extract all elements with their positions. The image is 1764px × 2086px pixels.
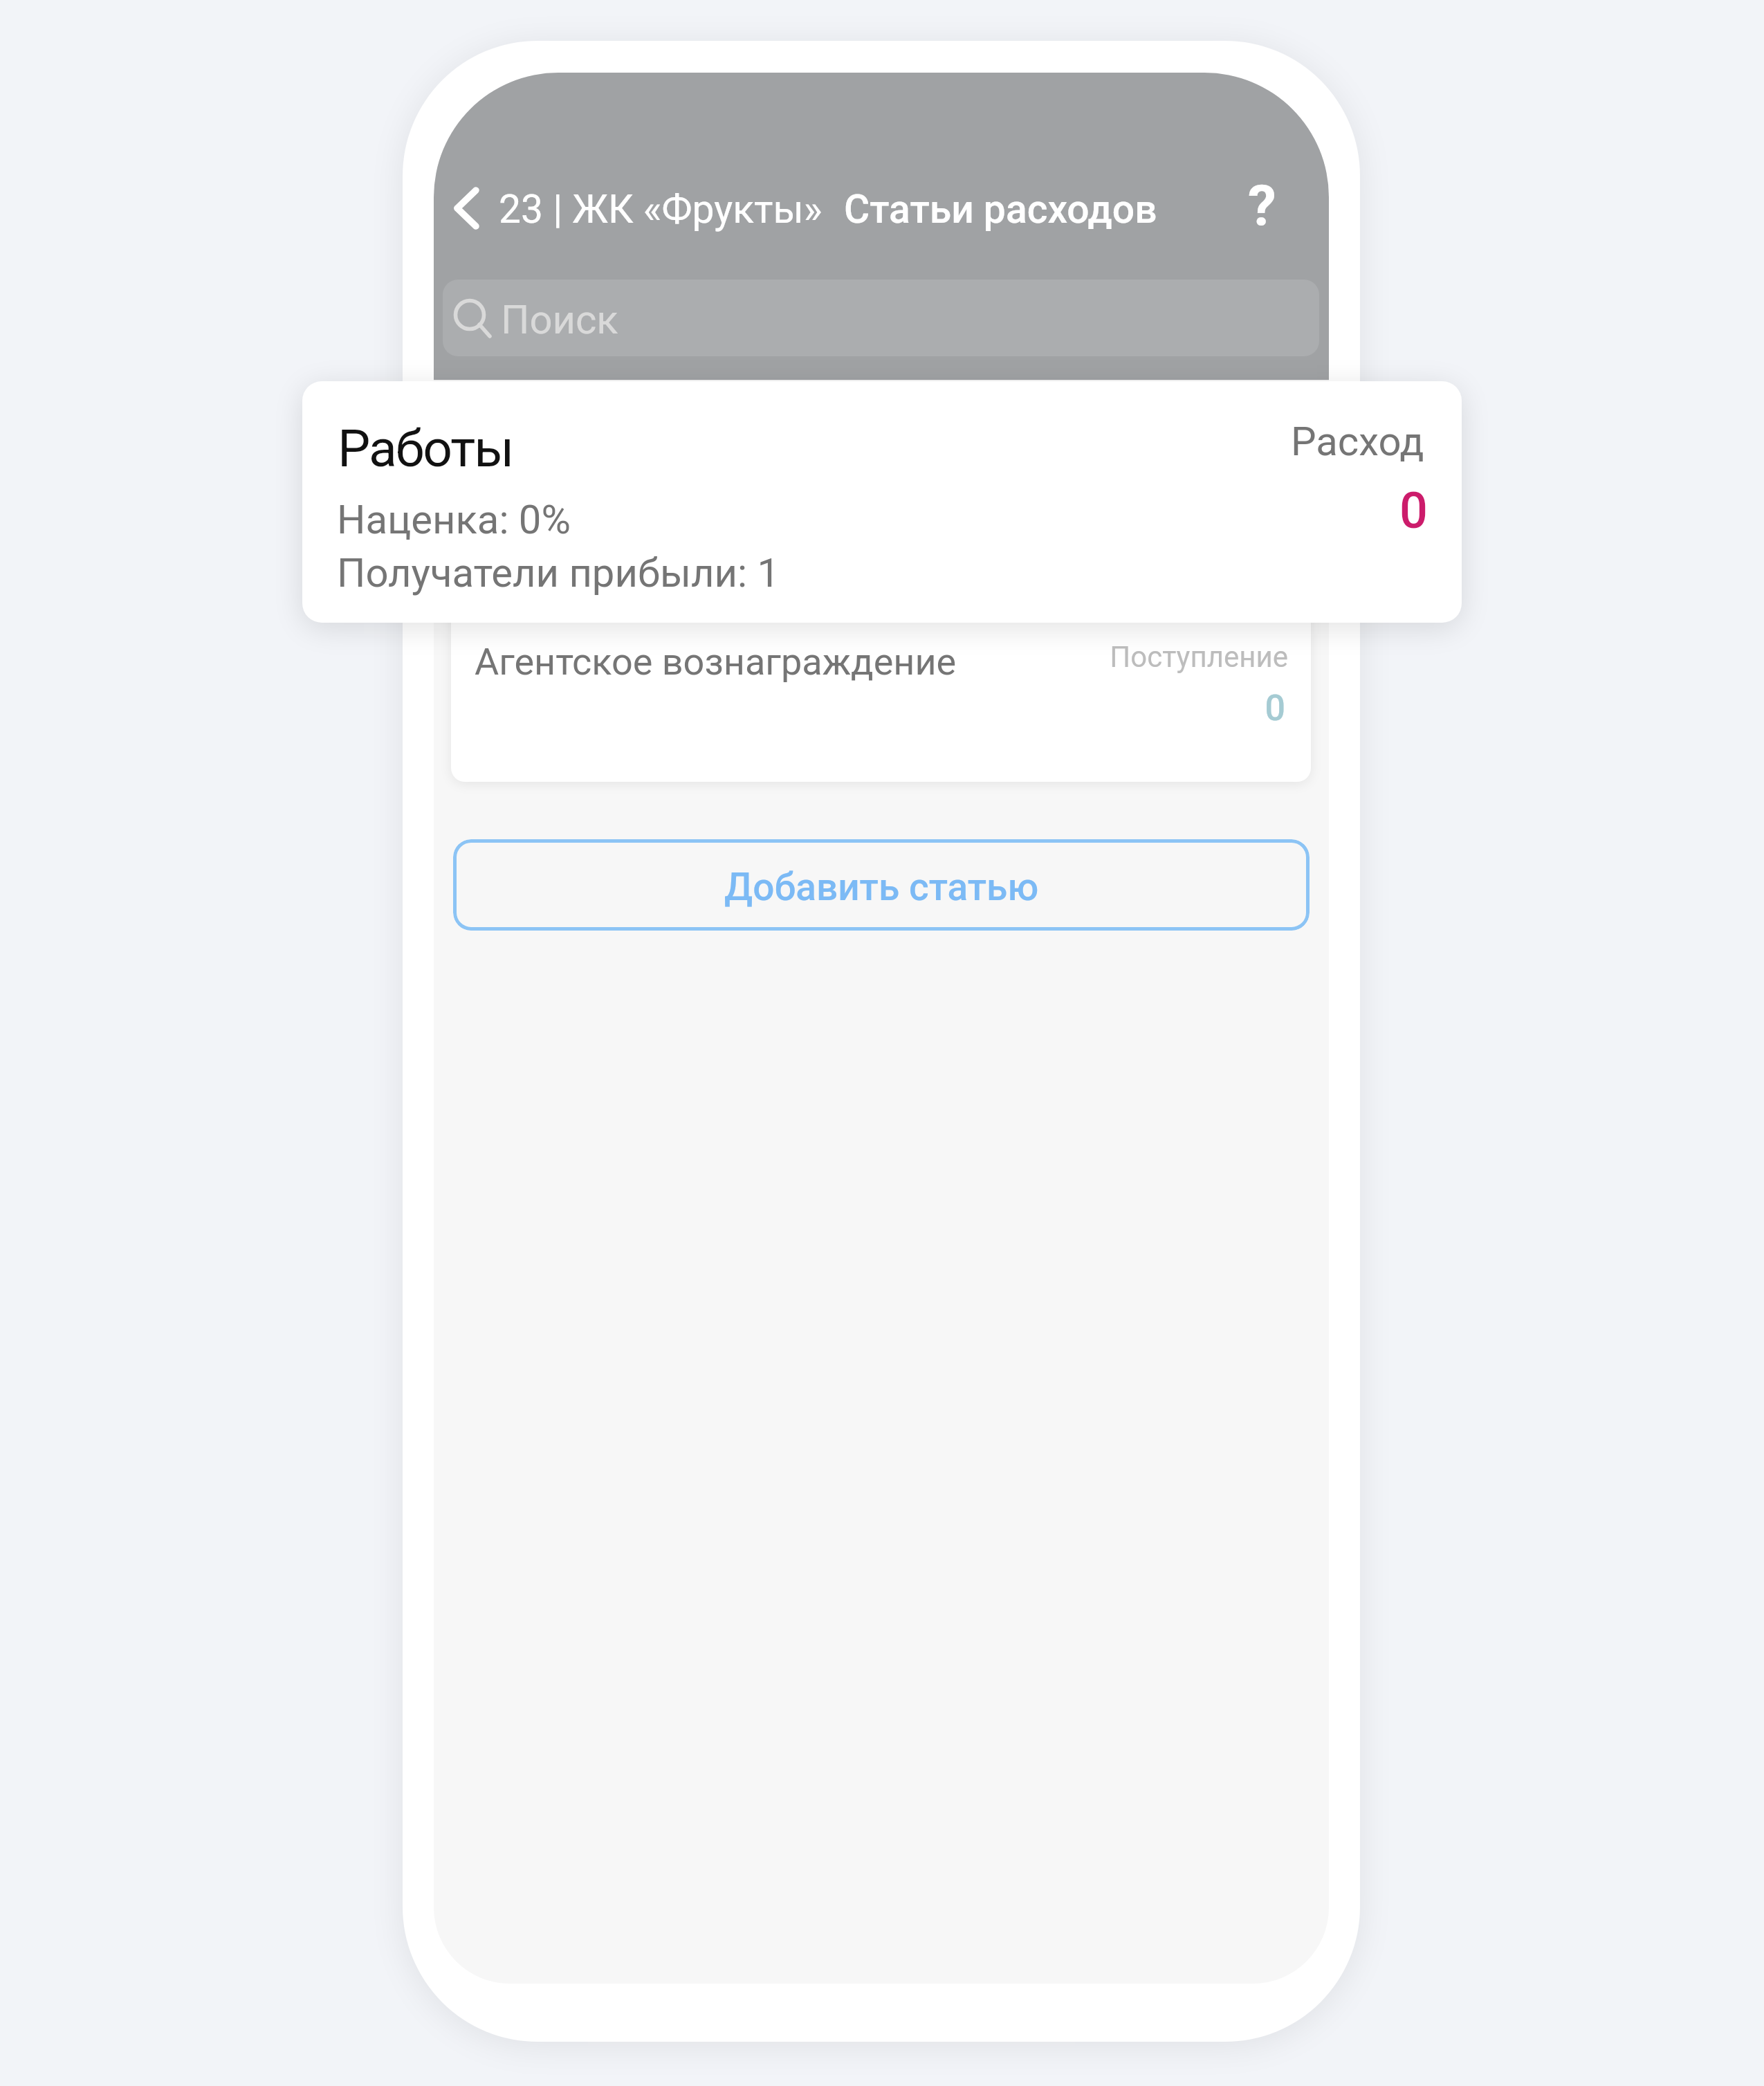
- button[interactable]: Help: [1217, 160, 1307, 250]
- button[interactable]: Поиск: [443, 280, 1319, 356]
- staticText: Добавить статью: [724, 865, 1039, 909]
- button[interactable]: Добавить статью: [453, 839, 1310, 931]
- staticText: 23 | ЖК «Фрукты»: [499, 186, 823, 232]
- staticText: Расход: [1291, 418, 1424, 465]
- staticText: Наценка: 0%: [337, 496, 571, 543]
- staticText: 0: [801, 687, 1285, 729]
- staticText: 0: [944, 482, 1428, 540]
- staticText: Работы: [338, 418, 513, 479]
- staticText: Статьи расходов: [844, 186, 1157, 232]
- button[interactable]: Работы: [302, 381, 1462, 623]
- staticText: Поступление: [804, 640, 1288, 674]
- button[interactable]: Back: [437, 160, 513, 236]
- staticText: Агентское вознаграждение: [475, 640, 957, 684]
- button[interactable]: Агентское вознаграждение: [451, 391, 1311, 782]
- staticText: ?: [1248, 173, 1276, 239]
- button[interactable]: 23 | ЖК «Фрукты»: [499, 176, 824, 241]
- staticText: Поиск: [501, 296, 618, 343]
- staticText: Получатели прибыли: 1: [337, 549, 780, 596]
- button[interactable]: Статьи расходов: [844, 176, 1159, 241]
